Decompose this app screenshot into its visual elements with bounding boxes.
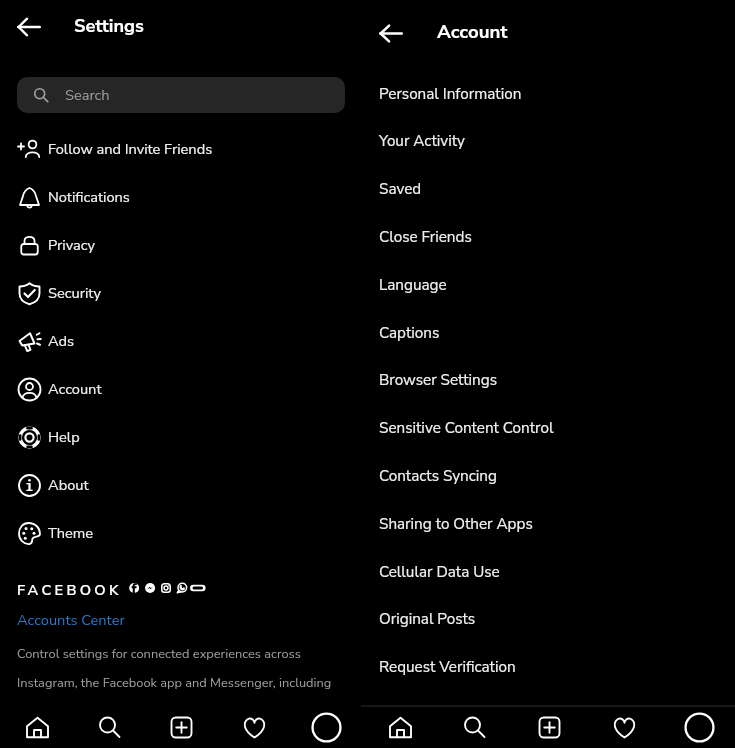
button[interactable]: Close Friends — [361, 214, 735, 261]
button[interactable]: Browser Settings — [361, 357, 735, 404]
button[interactable]: Search — [17, 77, 345, 113]
staticText: Help — [48, 427, 80, 447]
button[interactable]: Profile — [303, 704, 349, 748]
button[interactable]: Contacts Syncing — [361, 453, 735, 500]
button[interactable]: Profile — [676, 704, 722, 748]
button[interactable]: Request Verification — [361, 644, 735, 691]
staticText: Contacts Syncing — [379, 466, 497, 487]
staticText: Account — [437, 19, 508, 44]
staticText: Notifications — [48, 187, 130, 207]
button[interactable]: Account — [0, 365, 361, 413]
button[interactable]: Captions — [361, 310, 735, 357]
button[interactable]: About — [0, 461, 361, 509]
staticText: Personal Information — [379, 84, 522, 105]
button[interactable]: Notifications — [0, 173, 361, 221]
button[interactable]: Back — [379, 25, 403, 42]
button[interactable]: Create — [158, 704, 204, 748]
staticText: Accounts Center — [17, 610, 125, 630]
button[interactable]: Theme — [0, 509, 361, 557]
staticText: Sensitive Content Control — [379, 418, 554, 439]
button[interactable]: Privacy — [0, 221, 361, 269]
button[interactable]: Saved — [361, 166, 735, 213]
staticText: Instagram, the Facebook app and Messenge… — [17, 674, 332, 691]
staticText: Cellular Data Use — [379, 562, 500, 583]
button[interactable]: Follow and Invite Friends — [0, 125, 361, 173]
button[interactable]: Search — [86, 704, 132, 748]
button[interactable]: Activity — [601, 704, 647, 748]
staticText: Close Friends — [379, 227, 472, 248]
staticText: Control settings for connected experienc… — [17, 645, 301, 662]
staticText: Sharing to Other Apps — [379, 514, 533, 535]
button[interactable]: Home — [377, 704, 423, 748]
button[interactable]: Accounts Center — [17, 610, 125, 630]
button[interactable]: Your Activity — [361, 118, 735, 165]
staticText: Your Activity — [379, 131, 465, 152]
button[interactable]: Home — [14, 704, 60, 748]
button[interactable]: Help — [0, 413, 361, 461]
button[interactable]: Search — [451, 704, 497, 748]
staticText: Saved — [379, 179, 422, 200]
button[interactable]: Sensitive Content Control — [361, 405, 735, 452]
button[interactable]: Sharing to Other Apps — [361, 501, 735, 548]
staticText: Request Verification — [379, 657, 516, 678]
staticText: Language — [379, 275, 447, 296]
staticText: Account — [48, 379, 102, 399]
button[interactable]: Ads — [0, 317, 361, 365]
button[interactable]: Personal Information — [361, 71, 735, 118]
button[interactable]: Security — [0, 269, 361, 317]
button[interactable]: Original Posts — [361, 596, 735, 643]
button[interactable]: Create — [526, 704, 572, 748]
staticText: Search — [65, 85, 110, 105]
staticText: Captions — [379, 323, 440, 344]
staticText: Original Posts — [379, 609, 476, 630]
staticText: Theme — [48, 523, 94, 543]
staticText: Settings — [74, 14, 144, 39]
staticText: Security — [48, 283, 101, 303]
staticText: About — [48, 475, 89, 495]
staticText: Browser Settings — [379, 370, 497, 391]
button[interactable]: Back — [17, 18, 41, 36]
staticText: Privacy — [48, 235, 96, 255]
button[interactable]: Cellular Data Use — [361, 549, 735, 596]
button[interactable]: Language — [361, 262, 735, 309]
staticText: FACEBOOK — [17, 580, 122, 600]
staticText: Ads — [48, 331, 75, 351]
staticText: Follow and Invite Friends — [48, 139, 213, 159]
button[interactable]: Activity — [231, 704, 277, 748]
